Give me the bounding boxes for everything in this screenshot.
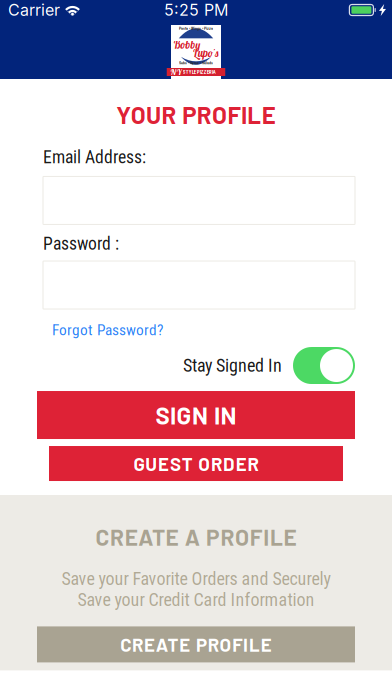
staticText: Lupo's bbox=[193, 46, 219, 60]
staticText: CREATE A PROFILE bbox=[95, 523, 296, 550]
staticText: Save your Credit Card Information bbox=[77, 589, 314, 610]
button[interactable]: SIGN IN bbox=[37, 391, 355, 439]
staticText: SIGN IN bbox=[155, 401, 236, 429]
staticText: Pasta • Wings • Pizza bbox=[179, 26, 213, 31]
button[interactable]: CREATE PROFILE bbox=[37, 626, 355, 662]
staticText: 5:25 PM bbox=[164, 0, 228, 20]
staticText: NY bbox=[170, 67, 181, 77]
button[interactable]: Forgot Password? bbox=[37, 321, 163, 339]
staticText: Stay Signed In bbox=[183, 355, 282, 376]
staticText: Email Address: bbox=[43, 147, 146, 167]
staticText: Password : bbox=[43, 233, 119, 254]
staticText: STYLE PIZZERIA bbox=[183, 69, 216, 75]
staticText: Save your Favorite Orders and Securely bbox=[61, 568, 330, 589]
staticText: Forgot Password? bbox=[52, 321, 163, 339]
staticText: Carrier bbox=[8, 0, 60, 20]
staticText: Subs • Gyros • Salads bbox=[179, 60, 213, 65]
staticText: CREATE PROFILE bbox=[120, 633, 272, 656]
button[interactable]: GUEST ORDER bbox=[49, 446, 343, 481]
staticText: GUEST ORDER bbox=[133, 452, 258, 475]
staticText: Bobby bbox=[173, 38, 200, 51]
button[interactable]: Stay Signed In toggle bbox=[293, 347, 355, 384]
staticText: YOUR PROFILE bbox=[116, 100, 276, 129]
